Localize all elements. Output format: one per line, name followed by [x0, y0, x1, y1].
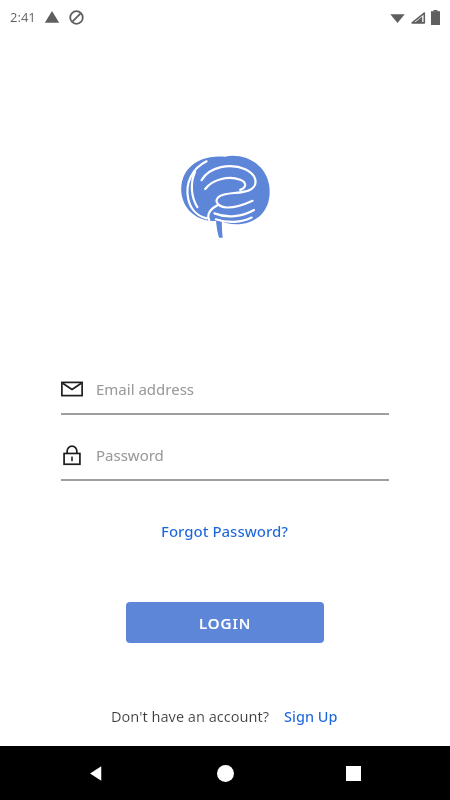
staticText: Sign Up	[284, 706, 338, 726]
button[interactable]: Email	[61, 373, 389, 415]
staticText: Email address	[96, 379, 195, 399]
button[interactable]: Recent apps	[329, 749, 377, 797]
button[interactable]: Forgot Password?	[153, 517, 297, 545]
staticText: Forgot Password?	[161, 521, 289, 541]
button[interactable]: Home	[201, 749, 249, 797]
other: Password	[61, 444, 83, 466]
button[interactable]: LOGIN	[126, 602, 324, 643]
staticText: 2:41	[10, 8, 36, 26]
staticText: LOGIN	[199, 613, 252, 633]
other: Email	[61, 378, 83, 400]
button[interactable]: Sign Up	[282, 703, 340, 729]
button[interactable]: Back	[72, 749, 120, 797]
button[interactable]: Password	[61, 439, 389, 481]
staticText: Password	[96, 445, 164, 465]
staticText: Don't have an account?	[111, 706, 269, 726]
